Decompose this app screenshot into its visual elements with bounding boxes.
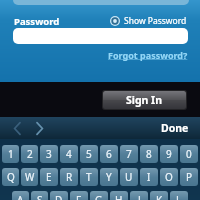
staticText: L <box>176 193 182 200</box>
staticText: Forgot password? <box>108 49 188 61</box>
staticText: 9 <box>166 147 172 161</box>
staticText: E <box>46 170 52 184</box>
staticText: Done <box>161 121 189 135</box>
staticText: O <box>165 170 173 184</box>
staticText: W <box>25 170 35 184</box>
staticText: I <box>147 170 151 184</box>
button[interactable]: E <box>40 168 58 186</box>
button[interactable]: 8 <box>140 145 158 163</box>
button[interactable]: 1 <box>2 145 19 163</box>
button[interactable]: 0 <box>180 145 198 163</box>
staticText: J <box>138 193 141 200</box>
staticText: 7 <box>126 147 132 161</box>
staticText: 1 <box>8 147 14 161</box>
staticText: K <box>156 193 163 200</box>
button[interactable]: Y <box>100 168 118 186</box>
button[interactable]: Next field <box>28 117 50 139</box>
staticText: G <box>95 193 103 200</box>
button[interactable]: 4 <box>60 145 78 163</box>
button[interactable]: P <box>180 168 198 186</box>
staticText: D <box>55 193 63 200</box>
button[interactable]: 9 <box>160 145 178 163</box>
staticText: U <box>125 170 133 184</box>
button[interactable]: S <box>31 191 48 200</box>
button[interactable] <box>13 28 188 44</box>
button[interactable]: O <box>160 168 178 186</box>
staticText: 8 <box>146 147 152 161</box>
staticText: Password <box>14 15 60 28</box>
button[interactable]: Sign In <box>103 91 186 109</box>
staticText: T <box>86 170 92 184</box>
button[interactable]: D <box>50 191 68 200</box>
staticText: Y <box>106 170 112 184</box>
button[interactable]: W <box>21 168 38 186</box>
staticText: 4 <box>66 147 72 161</box>
button[interactable]: 2 <box>21 145 38 163</box>
staticText: Q <box>7 170 15 184</box>
staticText: 6 <box>106 147 112 161</box>
button[interactable]: L <box>170 191 188 200</box>
staticText: Show Password <box>124 15 187 27</box>
staticText: A <box>17 193 24 200</box>
button[interactable]: Previous field <box>6 117 28 139</box>
button[interactable]: J <box>130 191 148 200</box>
staticText: S <box>37 193 43 200</box>
staticText: H <box>115 193 123 200</box>
button[interactable]: 7 <box>120 145 138 163</box>
button[interactable]: Show Password <box>108 13 189 29</box>
button[interactable]: I <box>140 168 158 186</box>
staticText: 0 <box>186 147 192 161</box>
button[interactable]: Q <box>2 168 19 186</box>
button[interactable]: H <box>110 191 128 200</box>
button[interactable]: U <box>120 168 138 186</box>
button[interactable]: 3 <box>40 145 58 163</box>
button[interactable]: 5 <box>80 145 98 163</box>
staticText: R <box>66 170 73 184</box>
button[interactable]: F <box>70 191 88 200</box>
button[interactable]: G <box>90 191 108 200</box>
button[interactable]: Done <box>161 118 200 138</box>
button[interactable]: T <box>80 168 98 186</box>
button[interactable]: K <box>150 191 168 200</box>
button[interactable]: Forgot password? <box>108 47 200 63</box>
button[interactable]: A <box>12 191 29 200</box>
staticText: 2 <box>27 147 33 161</box>
button[interactable]: R <box>60 168 78 186</box>
staticText: Sign In <box>126 93 163 107</box>
staticText: P <box>186 170 193 184</box>
staticText: F <box>76 193 82 200</box>
button[interactable]: 6 <box>100 145 118 163</box>
staticText: 3 <box>46 147 52 161</box>
staticText: 5 <box>86 147 92 161</box>
